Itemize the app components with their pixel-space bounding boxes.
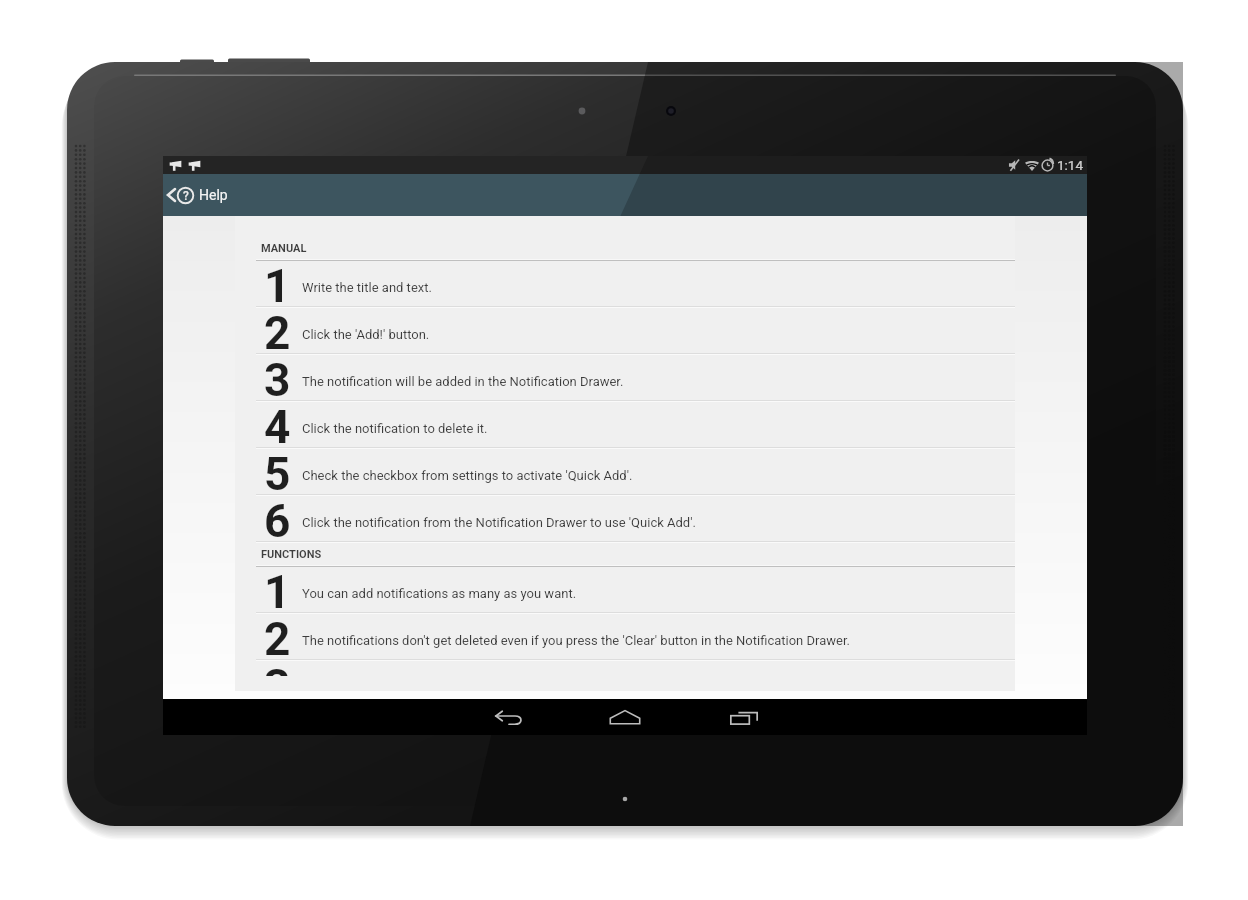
staticText: 4 <box>264 400 291 445</box>
staticText: 1 <box>264 565 291 610</box>
button[interactable]: Recents <box>683 699 799 735</box>
staticText: Help <box>199 187 228 203</box>
staticText: Click the notification from the Notifica… <box>302 515 696 530</box>
staticText: The notification will be added in the No… <box>302 374 624 389</box>
staticText: The notifications don't get deleted even… <box>302 633 850 648</box>
staticText: 2 <box>264 612 291 657</box>
button[interactable]: 2 <box>235 614 1015 661</box>
button[interactable]: 6 <box>235 496 1015 543</box>
staticText: Click the notification to delete it. <box>302 421 488 436</box>
staticText: FUNCTIONS <box>261 548 322 561</box>
button[interactable]: 1 <box>235 261 1015 308</box>
button[interactable]: 3 <box>235 661 1015 678</box>
staticText: You can add notifications as many as you… <box>302 586 577 601</box>
staticText: 1:14 <box>1057 157 1084 173</box>
button[interactable]: 1 <box>235 567 1015 614</box>
staticText: ? <box>183 189 189 203</box>
button[interactable]: Back <box>451 699 567 735</box>
staticText: 6 <box>264 494 291 539</box>
button[interactable]: 4 <box>235 402 1015 449</box>
button[interactable]: Navigate up <box>163 174 197 216</box>
staticText: 5 <box>264 447 291 492</box>
staticText: 3 <box>264 659 291 676</box>
staticText: 2 <box>264 306 291 351</box>
staticText: MANUAL <box>261 242 307 255</box>
button[interactable]: Home <box>567 699 683 735</box>
button[interactable]: 2 <box>235 308 1015 355</box>
staticText: Check the checkbox from settings to acti… <box>302 468 633 483</box>
staticText: Click the 'Add!' button. <box>302 327 430 342</box>
staticText: Write the title and text. <box>302 280 432 295</box>
button[interactable]: 5 <box>235 449 1015 496</box>
staticText: 1 <box>264 259 291 304</box>
button[interactable]: 3 <box>235 355 1015 402</box>
staticText: 3 <box>264 353 291 398</box>
